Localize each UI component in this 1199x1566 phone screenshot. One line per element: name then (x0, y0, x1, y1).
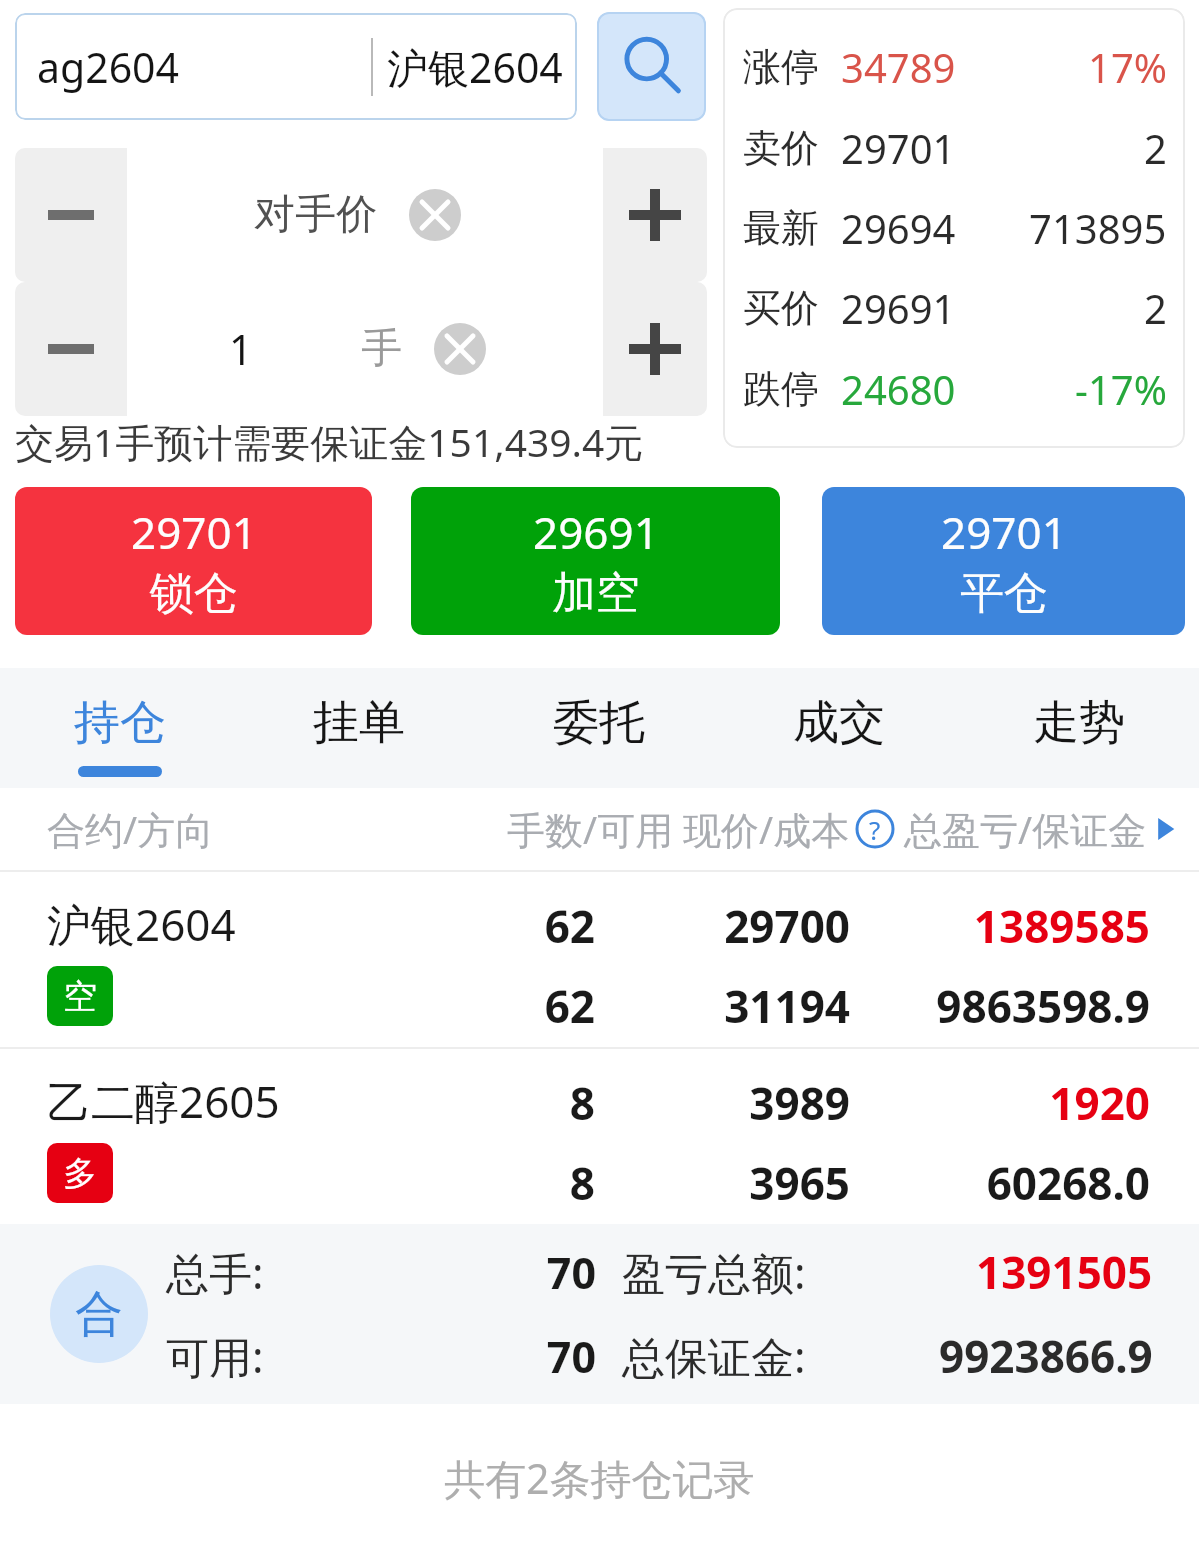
staticText: 9923866.9 (939, 1326, 1153, 1386)
staticText: 713895 (1029, 201, 1167, 255)
staticText: 挂单 (313, 694, 405, 752)
staticText: 可用: (166, 1327, 466, 1386)
staticText: 持仓 (74, 694, 166, 752)
staticText: 1 (229, 321, 253, 377)
staticText: 9863598.9 (850, 976, 1150, 1036)
staticText: 29700 (595, 896, 850, 956)
staticText: 29694 (841, 201, 956, 255)
staticText: 1920 (850, 1073, 1150, 1133)
button[interactable]: 29701 (15, 487, 372, 635)
button[interactable]: 买价 (743, 281, 1167, 335)
staticText: 8 (450, 1073, 595, 1133)
button[interactable]: 29701 (822, 487, 1185, 635)
button[interactable]: 1 (127, 282, 603, 416)
button[interactable]: 成交 (719, 668, 959, 788)
staticText: 盈亏总额: (622, 1243, 806, 1302)
staticText: 卖价 (743, 124, 819, 172)
staticText: 2 (1144, 121, 1167, 175)
staticText: 涨停 (743, 43, 819, 91)
staticText: 8 (450, 1153, 595, 1213)
staticText: 走势 (1033, 694, 1125, 752)
staticText: 总手: (166, 1243, 466, 1302)
button[interactable]: 涨停 (723, 8, 1185, 448)
staticText: 31194 (595, 976, 850, 1036)
button[interactable]: Increase (603, 282, 707, 416)
staticText: 总盈亏/保证金 (904, 803, 1147, 855)
staticText: 29691 (533, 502, 659, 562)
button[interactable]: 委托 (479, 668, 719, 788)
button[interactable]: 乙二醇2605 (0, 1049, 1199, 1224)
staticText: 1391505 (976, 1242, 1153, 1302)
button[interactable]: Clear (409, 189, 461, 241)
button[interactable]: 挂单 (239, 668, 479, 788)
staticText: 买价 (743, 284, 819, 332)
staticText: 24680 (841, 362, 956, 416)
button[interactable]: 卖价 (743, 121, 1167, 175)
staticText: -17% (1075, 362, 1167, 416)
button[interactable]: 涨停 (743, 40, 1167, 94)
staticText: 29701 (131, 502, 257, 562)
button[interactable]: 持仓 (0, 668, 239, 788)
staticText: 合约/方向 (47, 803, 214, 855)
staticText: 平仓 (960, 566, 1048, 621)
staticText: 沪银2604 (47, 894, 236, 954)
button[interactable]: 跌停 (743, 362, 1167, 416)
staticText: 70 (466, 1327, 596, 1386)
staticText: 手数/可用 现价/成本 (507, 803, 850, 855)
staticText: 空 (63, 975, 97, 1018)
staticText: 跌停 (743, 365, 819, 413)
staticText: 3965 (595, 1153, 850, 1213)
staticText: 最新 (743, 204, 819, 252)
staticText: 3989 (595, 1073, 850, 1133)
staticText: 加空 (552, 566, 640, 621)
staticText: 34789 (841, 40, 956, 94)
staticText: 2 (1144, 281, 1167, 335)
button[interactable]: Decrease (15, 148, 127, 282)
staticText: 29701 (841, 121, 956, 175)
button[interactable]: 对手价 (127, 148, 603, 282)
staticText: 合 (75, 1284, 123, 1344)
staticText: 1389585 (850, 896, 1150, 956)
staticText: 手 (361, 323, 402, 375)
staticText: ? (869, 812, 881, 847)
staticText: 70 (466, 1243, 596, 1302)
button[interactable]: 最新 (743, 201, 1167, 255)
staticText: 62 (450, 896, 595, 956)
staticText: 共有2条持仓记录 (444, 1450, 755, 1506)
button[interactable]: Decrease (15, 282, 127, 416)
button[interactable]: 29691 (411, 487, 780, 635)
staticText: 锁仓 (150, 566, 238, 621)
staticText: 交易1手预计需要保证金151,439.4元 (15, 415, 644, 468)
staticText: 62 (450, 976, 595, 1036)
staticText: 成交 (793, 694, 885, 752)
staticText: 委托 (553, 694, 645, 752)
button[interactable]: 沪银2604 (0, 872, 1199, 1047)
staticText: 多 (63, 1152, 97, 1195)
staticText: 乙二醇2605 (47, 1071, 280, 1131)
button[interactable]: Increase (603, 148, 707, 282)
staticText: 29701 (941, 502, 1067, 562)
staticText: 沪银2604 (387, 39, 563, 95)
staticText: ag2604 (37, 39, 180, 95)
staticText: 17% (1088, 40, 1167, 94)
button[interactable]: Clear (434, 323, 486, 375)
button[interactable]: Search (597, 12, 706, 121)
staticText: 对手价 (254, 189, 377, 241)
button[interactable]: ag2604 (15, 13, 577, 120)
button[interactable]: 走势 (959, 668, 1199, 788)
staticText: 总保证金: (622, 1327, 806, 1386)
staticText: 60268.0 (850, 1153, 1150, 1213)
staticText: 29691 (841, 281, 956, 335)
